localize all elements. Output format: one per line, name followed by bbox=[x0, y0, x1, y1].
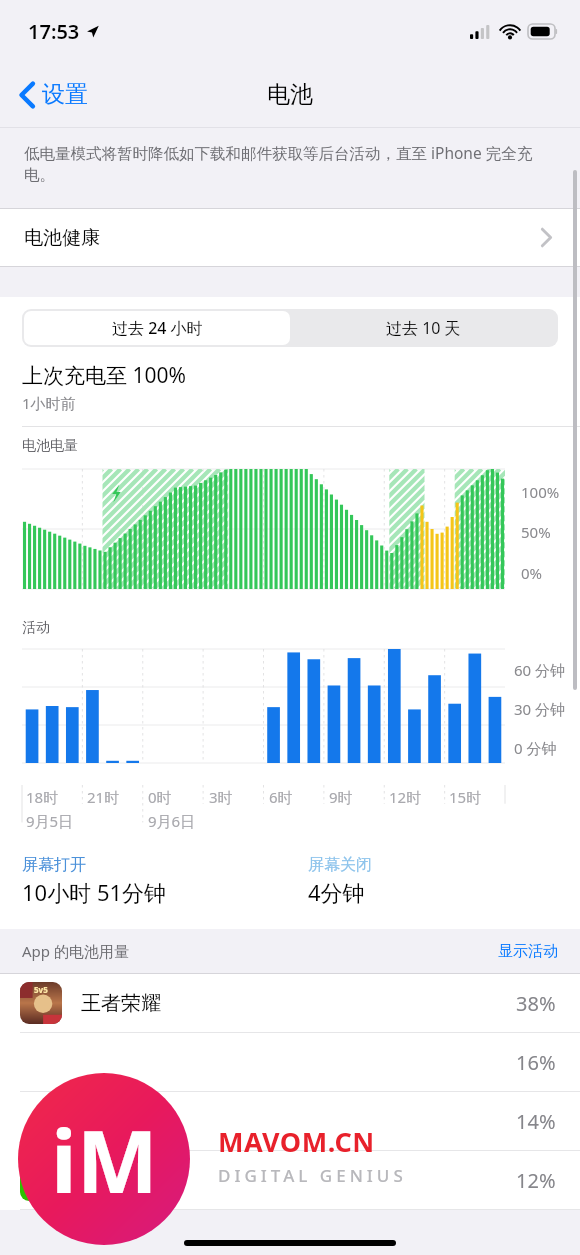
staticText: 活动 bbox=[22, 619, 50, 637]
staticText: 9时 bbox=[329, 787, 353, 807]
button[interactable]: 5v5 bbox=[0, 974, 580, 1032]
staticText: 低电量模式将暂时降低如下载和邮件获取等后台活动，直至 iPhone 完全充电。 bbox=[24, 142, 550, 184]
staticText: 上次充电至 100% bbox=[22, 361, 186, 390]
staticText: 17:53 bbox=[28, 18, 80, 45]
staticText: 9月5日 bbox=[26, 811, 74, 831]
staticText: 50% bbox=[521, 522, 551, 542]
staticText: 14% bbox=[516, 1108, 556, 1135]
staticText: 过去 10 天 bbox=[386, 317, 461, 339]
staticText: 12时 bbox=[389, 787, 422, 807]
staticText: 5v5 bbox=[34, 984, 48, 995]
button[interactable]: 12% bbox=[0, 1151, 580, 1209]
button[interactable]: 过去 10 天 bbox=[290, 311, 556, 345]
staticText: 屏幕关闭 bbox=[308, 855, 372, 875]
button[interactable]: 过去 24 小时 bbox=[24, 311, 290, 345]
staticText: iM bbox=[51, 1101, 158, 1218]
staticText: 电池 bbox=[267, 80, 313, 109]
staticText: 12% bbox=[516, 1167, 556, 1194]
staticText: 0% bbox=[521, 563, 543, 583]
staticText: 0 分钟 bbox=[514, 738, 557, 758]
staticText: 4分钟 bbox=[308, 877, 365, 907]
staticText: 15时 bbox=[449, 787, 482, 807]
button[interactable]: 设置 bbox=[14, 74, 94, 115]
staticText: 16% bbox=[516, 1049, 556, 1076]
staticText: 9月6日 bbox=[148, 811, 196, 831]
button[interactable]: 16% bbox=[0, 1033, 580, 1091]
button[interactable]: 显示活动 bbox=[498, 942, 580, 961]
staticText: 18时 bbox=[26, 787, 59, 807]
staticText: 1小时前 bbox=[22, 393, 76, 413]
button[interactable]: 电池健康 bbox=[0, 209, 580, 266]
staticText: 21时 bbox=[87, 787, 120, 807]
staticText: 过去 24 小时 bbox=[112, 317, 203, 339]
staticText: 100% bbox=[521, 482, 560, 502]
staticText: 30 分钟 bbox=[514, 699, 566, 719]
staticText: 60 分钟 bbox=[514, 660, 566, 680]
staticText: 10小时 51分钟 bbox=[22, 877, 167, 907]
staticText: 电池健康 bbox=[24, 226, 100, 250]
staticText: App 的电池用量 bbox=[22, 941, 129, 961]
staticText: 0时 bbox=[148, 787, 172, 807]
staticText: 屏幕打开 bbox=[22, 855, 86, 875]
staticText: 王者荣耀 bbox=[81, 991, 161, 1016]
staticText: 3时 bbox=[209, 787, 233, 807]
staticText: MAVOM.CN bbox=[218, 1123, 375, 1160]
staticText: 38% bbox=[516, 990, 556, 1017]
staticText: 设置 bbox=[42, 80, 88, 109]
staticText: 显示活动 bbox=[498, 942, 558, 961]
button[interactable]: 14% bbox=[0, 1092, 580, 1150]
staticText: 电池电量 bbox=[22, 437, 78, 455]
staticText: 6时 bbox=[269, 787, 293, 807]
staticText: DIGITAL GENIUS bbox=[218, 1164, 407, 1187]
